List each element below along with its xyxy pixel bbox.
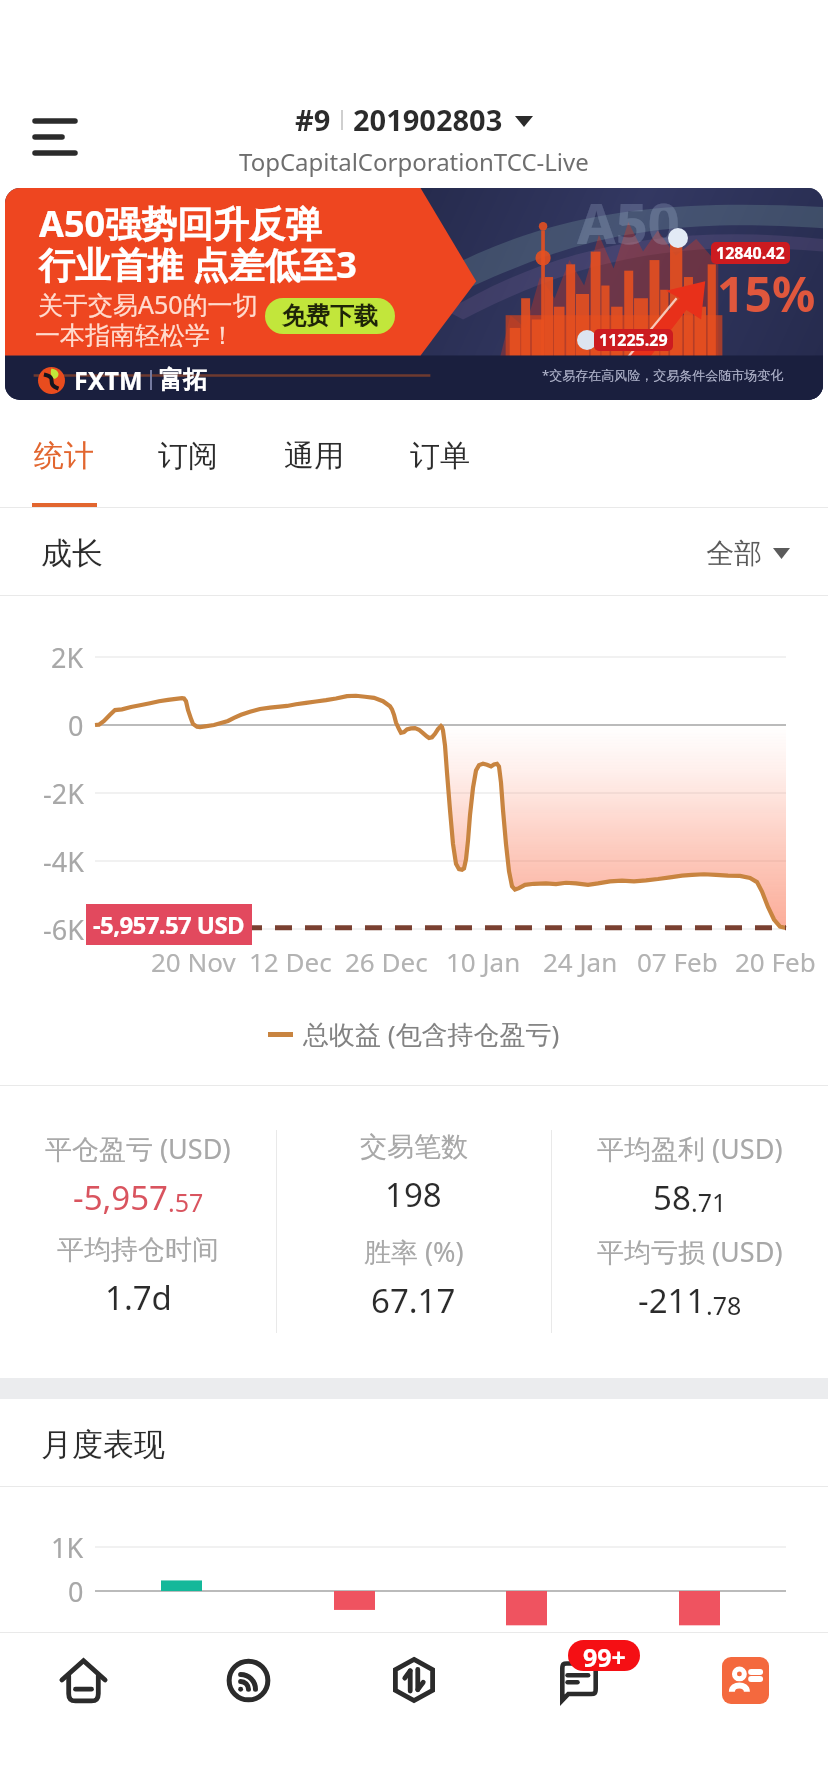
staticText: 关于交易A50的一切 bbox=[38, 287, 258, 321]
button[interactable]: 通用 bbox=[266, 426, 362, 508]
staticText: 平均亏损 (USD) bbox=[597, 1233, 783, 1270]
button[interactable]: 平均持仓时间 bbox=[0, 1225, 276, 1328]
staticText: 统计 bbox=[34, 437, 94, 475]
staticText: FXTM bbox=[74, 363, 143, 397]
staticText: 2K bbox=[51, 639, 84, 676]
staticText: 0 bbox=[68, 707, 84, 744]
staticText: 平仓盈亏 (USD) bbox=[45, 1130, 231, 1167]
staticText: 26 Dec bbox=[345, 944, 428, 979]
staticText: 总收益 (包含持仓盈亏) bbox=[303, 1016, 560, 1052]
staticText: 订阅 bbox=[158, 437, 218, 475]
button[interactable]: 全部 bbox=[706, 536, 790, 571]
staticText: -5,957 bbox=[73, 1175, 168, 1220]
staticText: A50 bbox=[577, 188, 680, 260]
staticText: 全部 bbox=[706, 536, 762, 571]
staticText: 1K bbox=[51, 1529, 84, 1566]
button[interactable]: 平仓盈亏 (USD) bbox=[0, 1122, 276, 1225]
button[interactable]: 统计 bbox=[16, 426, 112, 508]
staticText: 成长 bbox=[41, 534, 103, 573]
staticText: 12840.42 bbox=[716, 242, 785, 264]
staticText: 10 Jan bbox=[446, 944, 521, 979]
staticText: 订单 bbox=[410, 437, 470, 475]
staticText: 免费下载 bbox=[282, 301, 378, 331]
staticText: *交易存在高风险，交易条件会随市场变化 bbox=[542, 366, 784, 384]
button[interactable]: 平均亏损 (USD) bbox=[551, 1225, 828, 1328]
staticText: -2K bbox=[43, 775, 84, 812]
staticText: 月度表现 bbox=[41, 1425, 165, 1464]
staticText: 行业首推 点差低至3 bbox=[39, 240, 357, 289]
staticText: 12 Dec bbox=[249, 944, 332, 979]
staticText: 胜率 (%) bbox=[364, 1233, 464, 1270]
staticText: A50强势回升反弹 bbox=[39, 199, 322, 248]
staticText: 20 Nov bbox=[151, 944, 236, 979]
staticText: -211 bbox=[638, 1278, 706, 1323]
button[interactable]: #9 bbox=[0, 100, 828, 178]
staticText: 99+ bbox=[583, 1640, 626, 1671]
button[interactable]: Home bbox=[3, 1634, 163, 1726]
button[interactable]: 订阅 bbox=[140, 426, 236, 508]
staticText: 24 Jan bbox=[543, 944, 618, 979]
button[interactable]: Profile bbox=[665, 1634, 825, 1726]
button[interactable]: 交易笔数 bbox=[276, 1122, 551, 1225]
staticText: 15% bbox=[717, 261, 816, 326]
staticText: 20 Feb bbox=[735, 944, 816, 979]
button[interactable]: Messages bbox=[500, 1634, 660, 1726]
staticText: 67.17 bbox=[371, 1278, 456, 1323]
staticText: 平均持仓时间 bbox=[57, 1233, 219, 1267]
staticText: #9 bbox=[295, 100, 331, 139]
staticText: -5,957.57 USD bbox=[93, 908, 245, 941]
staticText: .71 bbox=[691, 1185, 727, 1219]
staticText: 11225.29 bbox=[599, 329, 668, 351]
staticText: 1.7d bbox=[105, 1275, 172, 1320]
staticText: 58 bbox=[653, 1175, 691, 1220]
button[interactable]: Signals bbox=[168, 1634, 328, 1726]
staticText: 富拓 bbox=[159, 365, 207, 395]
staticText: 交易笔数 bbox=[360, 1130, 468, 1164]
button[interactable]: Menu bbox=[19, 101, 91, 173]
button[interactable]: 订单 bbox=[392, 426, 488, 508]
staticText: -4K bbox=[43, 843, 84, 880]
staticText: -6K bbox=[43, 911, 84, 948]
staticText: 201902803 bbox=[353, 100, 503, 139]
staticText: .78 bbox=[706, 1288, 742, 1322]
button[interactable]: Trade bbox=[334, 1634, 494, 1726]
staticText: .57 bbox=[168, 1185, 204, 1219]
staticText: TopCapitalCorporationTCC-Live bbox=[239, 145, 589, 178]
staticText: 通用 bbox=[284, 437, 344, 475]
staticText: 0 bbox=[68, 1573, 84, 1610]
staticText: 平均盈利 (USD) bbox=[597, 1130, 783, 1167]
button[interactable]: Free download bbox=[265, 298, 395, 334]
button[interactable]: 胜率 (%) bbox=[276, 1225, 551, 1328]
staticText: 198 bbox=[385, 1172, 442, 1217]
staticText: 07 Feb bbox=[637, 944, 718, 979]
staticText: 一本指南轻松学！ bbox=[35, 320, 235, 351]
button[interactable]: 平均盈利 (USD) bbox=[551, 1122, 828, 1225]
button[interactable]: FXTM A50 advertisement bbox=[5, 188, 823, 400]
